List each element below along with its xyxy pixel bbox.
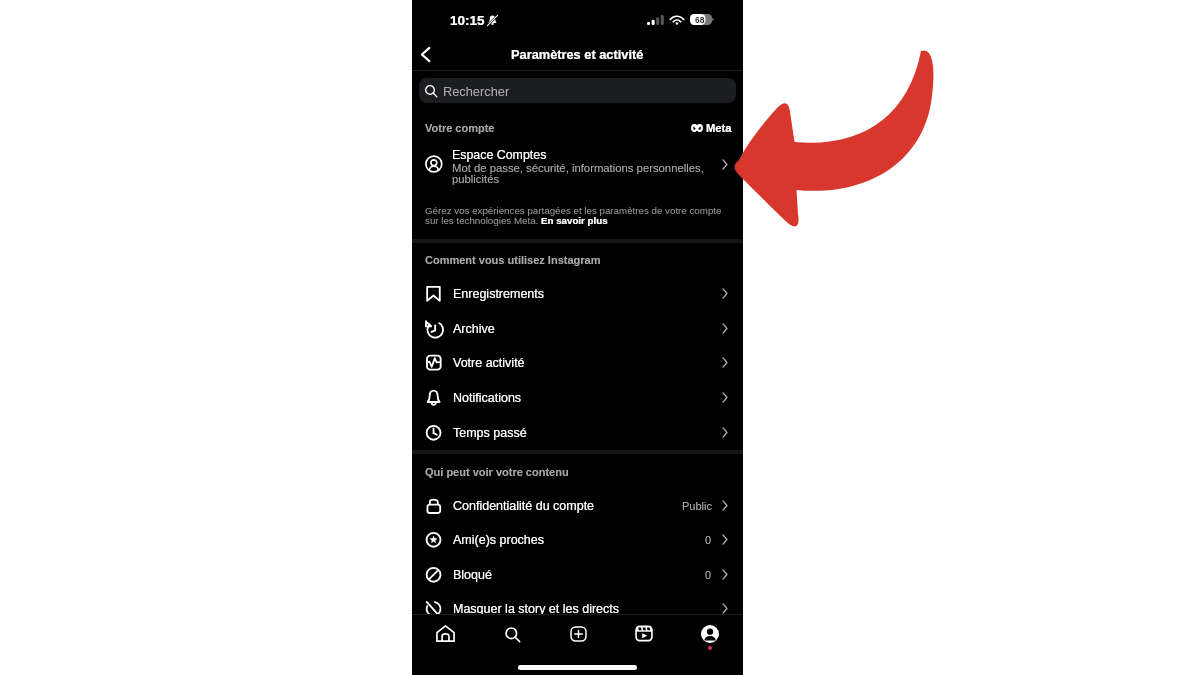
button[interactable]: Temps passé [412,415,743,450]
staticText: Rechercher [443,84,510,98]
staticText: Espace Comptes [452,148,547,162]
staticText: Public [682,500,712,512]
staticText: 68 [695,15,705,24]
staticText: Enregistrements [453,287,545,301]
staticText: Temps passé [453,426,527,440]
staticText: Notifications [453,391,522,405]
staticText: Votre compte [425,122,495,134]
button[interactable]: Archive [412,311,743,346]
button[interactable]: Rechercher [419,78,736,103]
button[interactable]: Reels [611,615,677,652]
staticText: Mot de passe, sécurité, informations per… [452,162,708,185]
button[interactable]: Back [412,41,438,67]
staticText: Votre activité [453,356,525,370]
button[interactable]: Home [412,615,479,652]
staticText: 10:15 [450,13,485,28]
button[interactable]: Enregistrements [412,276,743,311]
staticText: Bloqué [453,568,492,582]
staticText: Paramètres et activité [511,47,644,61]
staticText: 0 [705,569,712,581]
button[interactable]: Ami(e)s proches [412,522,743,557]
staticText: Masquer la story et les directs [453,602,620,616]
staticText: Ami(e)s proches [453,533,544,547]
staticText: Archive [453,322,495,336]
button[interactable]: Votre activité [412,345,743,380]
staticText: Comment vous utilisez Instagram [425,254,601,266]
button[interactable]: Create [545,615,611,652]
button[interactable]: Masquer la story et les directs [412,591,743,626]
button[interactable]: Search [479,615,545,652]
button[interactable]: Notifications [412,380,743,415]
staticText: Qui peut voir votre contenu [425,466,569,478]
button[interactable]: Confidentialité du compte [412,488,743,523]
staticText: Meta [706,122,732,135]
staticText: Gérez vos expériences partagées et les p… [425,205,737,226]
staticText: Confidentialité du compte [453,499,595,513]
staticText: 0 [705,534,712,546]
button[interactable]: Profile [677,615,743,652]
button[interactable]: Bloqué [412,557,743,592]
button[interactable]: Espace Comptes [412,146,743,192]
